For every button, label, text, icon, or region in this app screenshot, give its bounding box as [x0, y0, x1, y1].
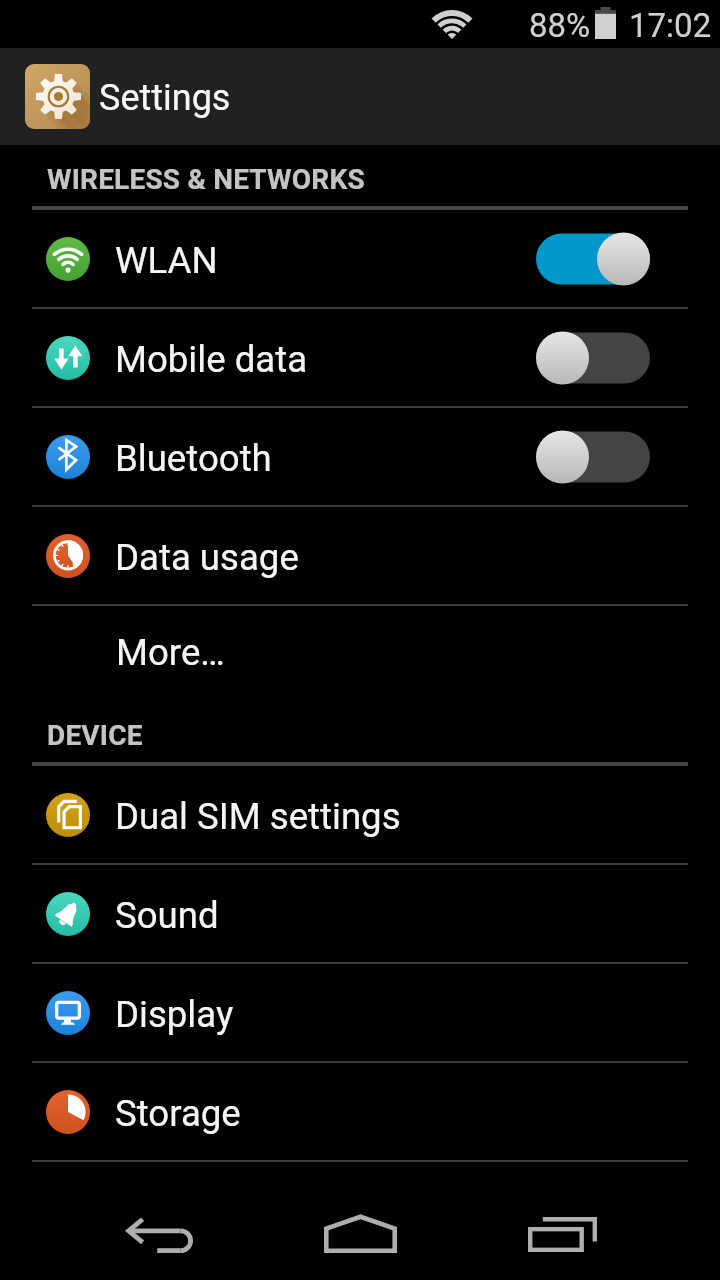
- staticText: Display: [115, 993, 234, 1036]
- staticText: Dual SIM settings: [115, 795, 401, 838]
- staticText: DEVICE: [47, 719, 143, 752]
- button[interactable]: Off: [536, 430, 650, 484]
- staticText: Mobile data: [115, 338, 308, 381]
- button[interactable]: Data usage: [0, 507, 720, 604]
- button[interactable]: Mobile data: [0, 309, 720, 406]
- staticText: Sound: [115, 894, 219, 937]
- staticText: 88%: [529, 6, 591, 45]
- button[interactable]: Sound: [0, 865, 720, 962]
- button[interactable]: Bluetooth: [0, 408, 720, 505]
- staticText: Bluetooth: [115, 437, 272, 480]
- button[interactable]: Storage: [0, 1063, 720, 1160]
- staticText: Settings: [99, 77, 231, 119]
- staticText: 17:02: [629, 6, 712, 45]
- button[interactable]: Display: [0, 964, 720, 1061]
- staticText: Data usage: [115, 536, 299, 579]
- button[interactable]: Home: [310, 1195, 410, 1271]
- button[interactable]: WLAN: [0, 210, 720, 307]
- staticText: WIRELESS & NETWORKS: [47, 163, 365, 196]
- button[interactable]: Back: [110, 1198, 210, 1274]
- button[interactable]: Recent apps: [512, 1196, 612, 1272]
- button[interactable]: On: [536, 232, 650, 286]
- staticText: More…: [116, 631, 225, 674]
- staticText: WLAN: [115, 239, 218, 282]
- button[interactable]: Dual SIM settings: [0, 766, 720, 863]
- staticText: Storage: [115, 1092, 241, 1135]
- button[interactable]: Off: [536, 331, 650, 385]
- button[interactable]: More…: [0, 606, 720, 701]
